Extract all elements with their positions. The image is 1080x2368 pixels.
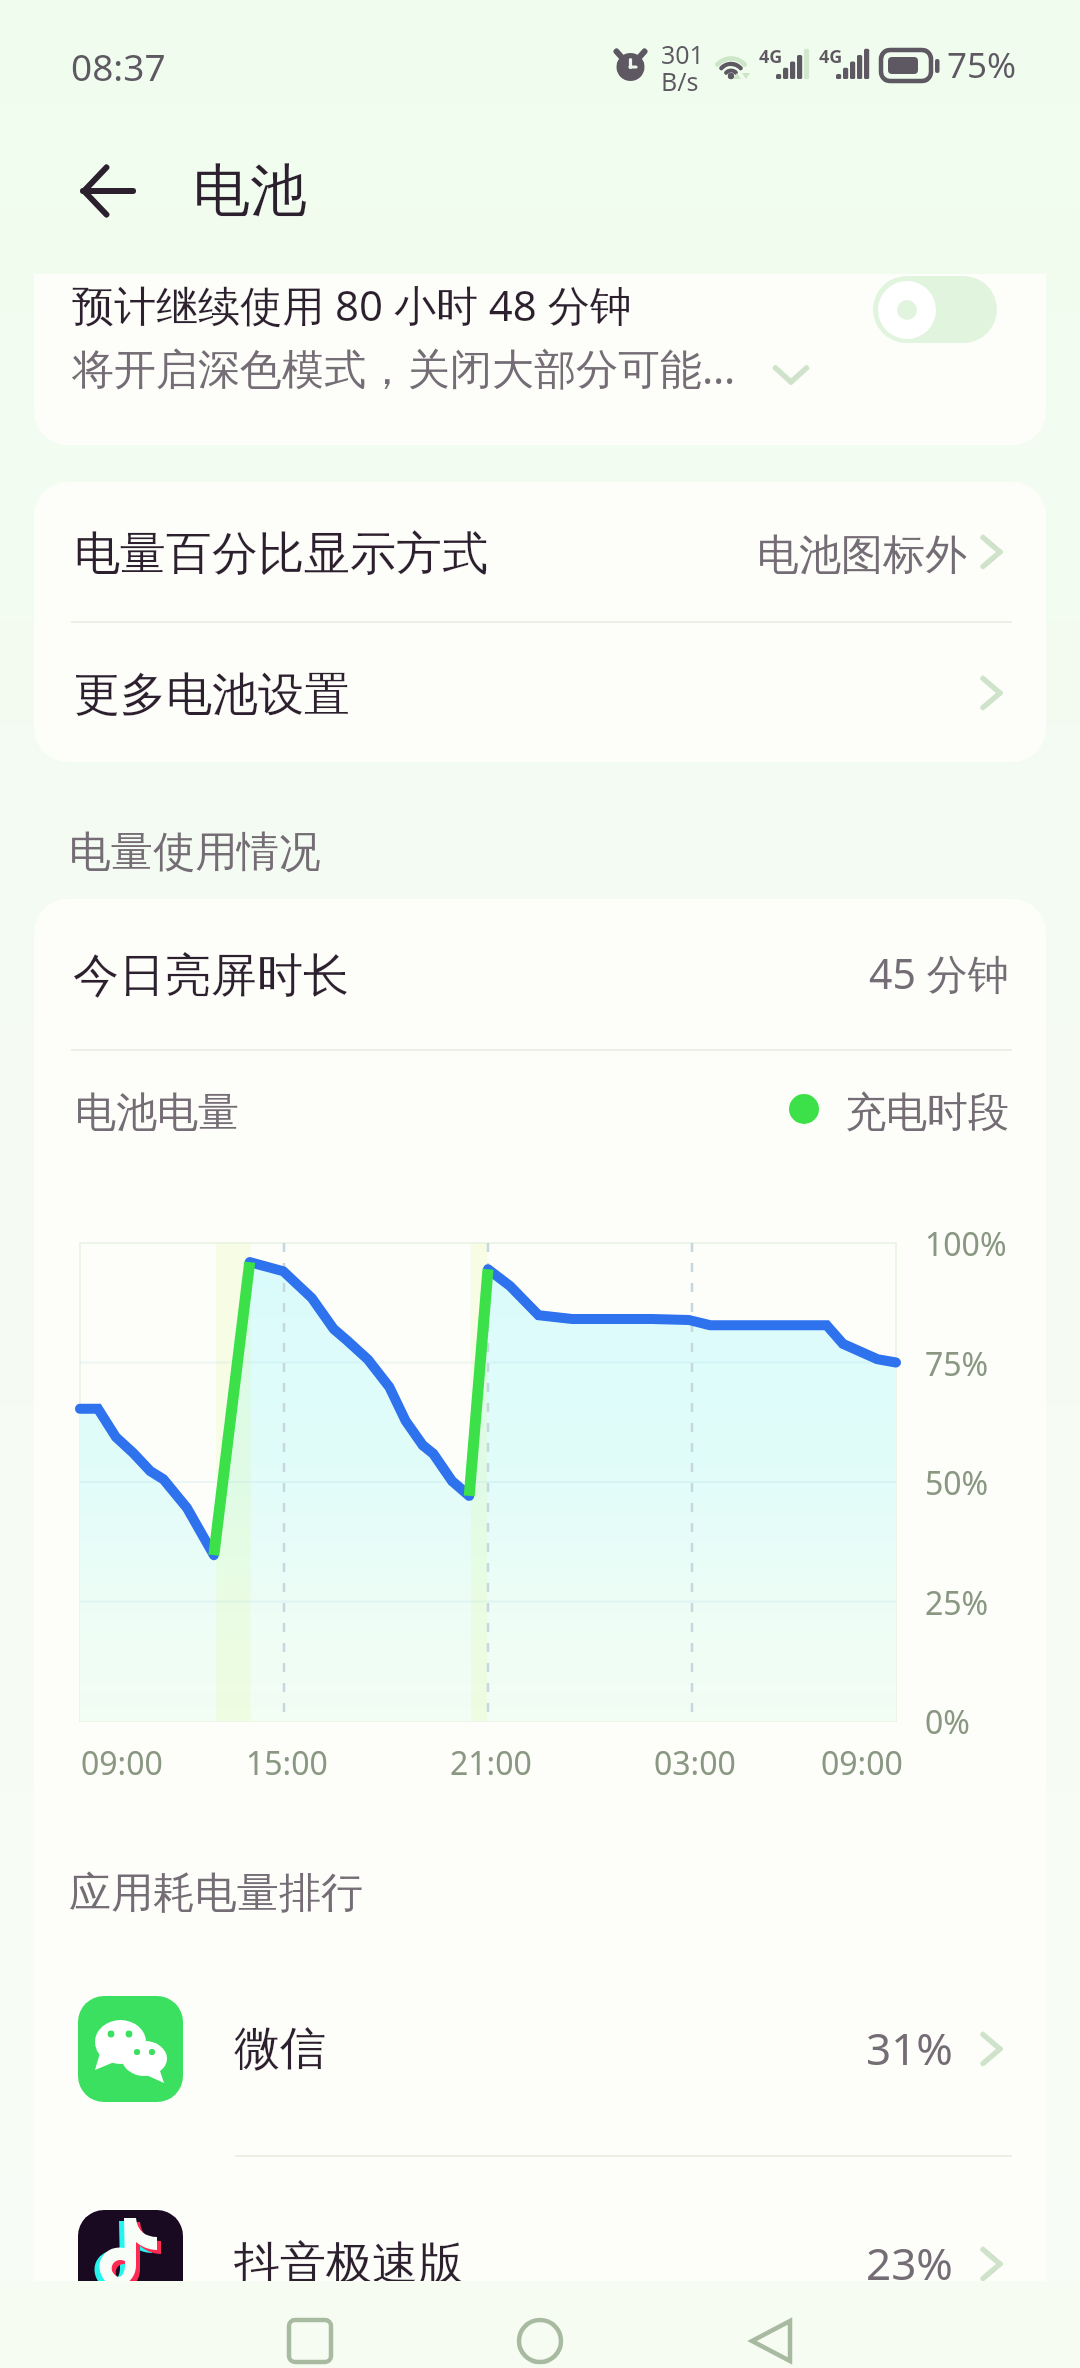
button[interactable]: Back bbox=[723, 2293, 819, 2368]
staticText: 更多电池设置 bbox=[74, 666, 350, 724]
staticText: 应用耗电量排行 bbox=[69, 1867, 363, 1920]
staticText: 75% bbox=[947, 41, 1017, 89]
staticText: 15:00 bbox=[246, 1741, 328, 1785]
button[interactable] bbox=[34, 899, 1046, 1049]
staticText: 50% bbox=[925, 1461, 989, 1505]
staticText: 301 bbox=[661, 37, 704, 71]
staticText: 电量百分比显示方式 bbox=[74, 525, 488, 583]
staticText: 4G bbox=[759, 44, 783, 69]
staticText: 微信 bbox=[234, 2020, 326, 2078]
button[interactable] bbox=[34, 1932, 1046, 2155]
staticText: 电量使用情况 bbox=[69, 826, 321, 879]
staticText: 23% bbox=[866, 2233, 953, 2293]
staticText: 09:00 bbox=[821, 1741, 903, 1785]
staticText: 21:00 bbox=[450, 1741, 532, 1785]
staticText: 03:00 bbox=[654, 1741, 736, 1785]
staticText: 电池图标外 bbox=[757, 529, 967, 582]
staticText: B/s bbox=[661, 64, 699, 98]
staticText: 电池 bbox=[193, 155, 307, 227]
staticText: 09:00 bbox=[81, 1741, 163, 1785]
staticText: 45 分钟 bbox=[869, 945, 1009, 1001]
button[interactable] bbox=[34, 482, 1046, 621]
button[interactable]: Home bbox=[492, 2293, 588, 2368]
staticText: 0% bbox=[925, 1700, 970, 1744]
staticText: 预计继续使用 80 小时 48 分钟 bbox=[72, 276, 632, 333]
button[interactable] bbox=[34, 2155, 1046, 2289]
staticText: 4G bbox=[819, 44, 843, 69]
staticText: 电池电量 bbox=[75, 1087, 239, 1139]
staticText: 100% bbox=[925, 1222, 1007, 1266]
staticText: 抖音极速版 bbox=[234, 2235, 464, 2293]
button[interactable]: Back bbox=[60, 143, 155, 238]
button[interactable]: Power saving mode toggle bbox=[873, 276, 997, 343]
button[interactable] bbox=[34, 274, 1046, 445]
staticText: 将开启深色模式，关闭大部分可能… bbox=[72, 339, 736, 396]
button[interactable] bbox=[34, 621, 1046, 762]
button[interactable]: Recents bbox=[262, 2293, 358, 2368]
staticText: 充电时段 bbox=[845, 1087, 1009, 1139]
staticText: 08:37 bbox=[71, 41, 166, 91]
staticText: 25% bbox=[925, 1581, 989, 1625]
staticText: 31% bbox=[866, 2018, 953, 2078]
staticText: 今日亮屏时长 bbox=[73, 947, 349, 1005]
staticText: 75% bbox=[925, 1342, 989, 1386]
